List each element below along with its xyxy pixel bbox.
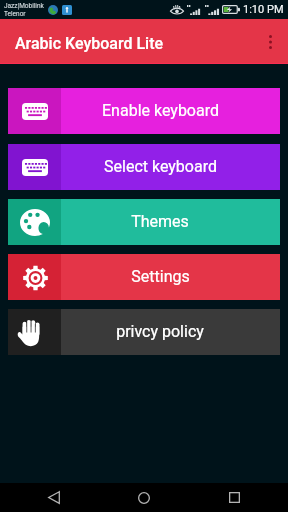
staticText: Telenor bbox=[4, 10, 26, 18]
staticText: Settings bbox=[131, 267, 190, 286]
button[interactable]: Back bbox=[18, 483, 90, 512]
button[interactable]: Home bbox=[108, 483, 180, 512]
button[interactable]: Themes bbox=[8, 199, 280, 245]
button[interactable]: More options bbox=[253, 19, 288, 64]
staticText: Themes bbox=[131, 212, 189, 231]
button[interactable]: Recent apps bbox=[198, 483, 270, 512]
staticText: Enable keyboard bbox=[102, 101, 219, 120]
staticText: privcy policy bbox=[116, 322, 204, 341]
button[interactable]: Select keyboard bbox=[8, 144, 280, 190]
staticText: Select keyboard bbox=[104, 157, 217, 176]
staticText: Jazz|Mobilink bbox=[4, 2, 44, 10]
staticText: Arabic Keyboard Lite bbox=[15, 34, 164, 53]
staticText: 1:10 PM bbox=[243, 3, 284, 16]
button[interactable]: Enable keyboard bbox=[8, 88, 280, 134]
button[interactable]: Settings bbox=[8, 254, 280, 300]
button[interactable]: privcy policy bbox=[8, 309, 280, 355]
